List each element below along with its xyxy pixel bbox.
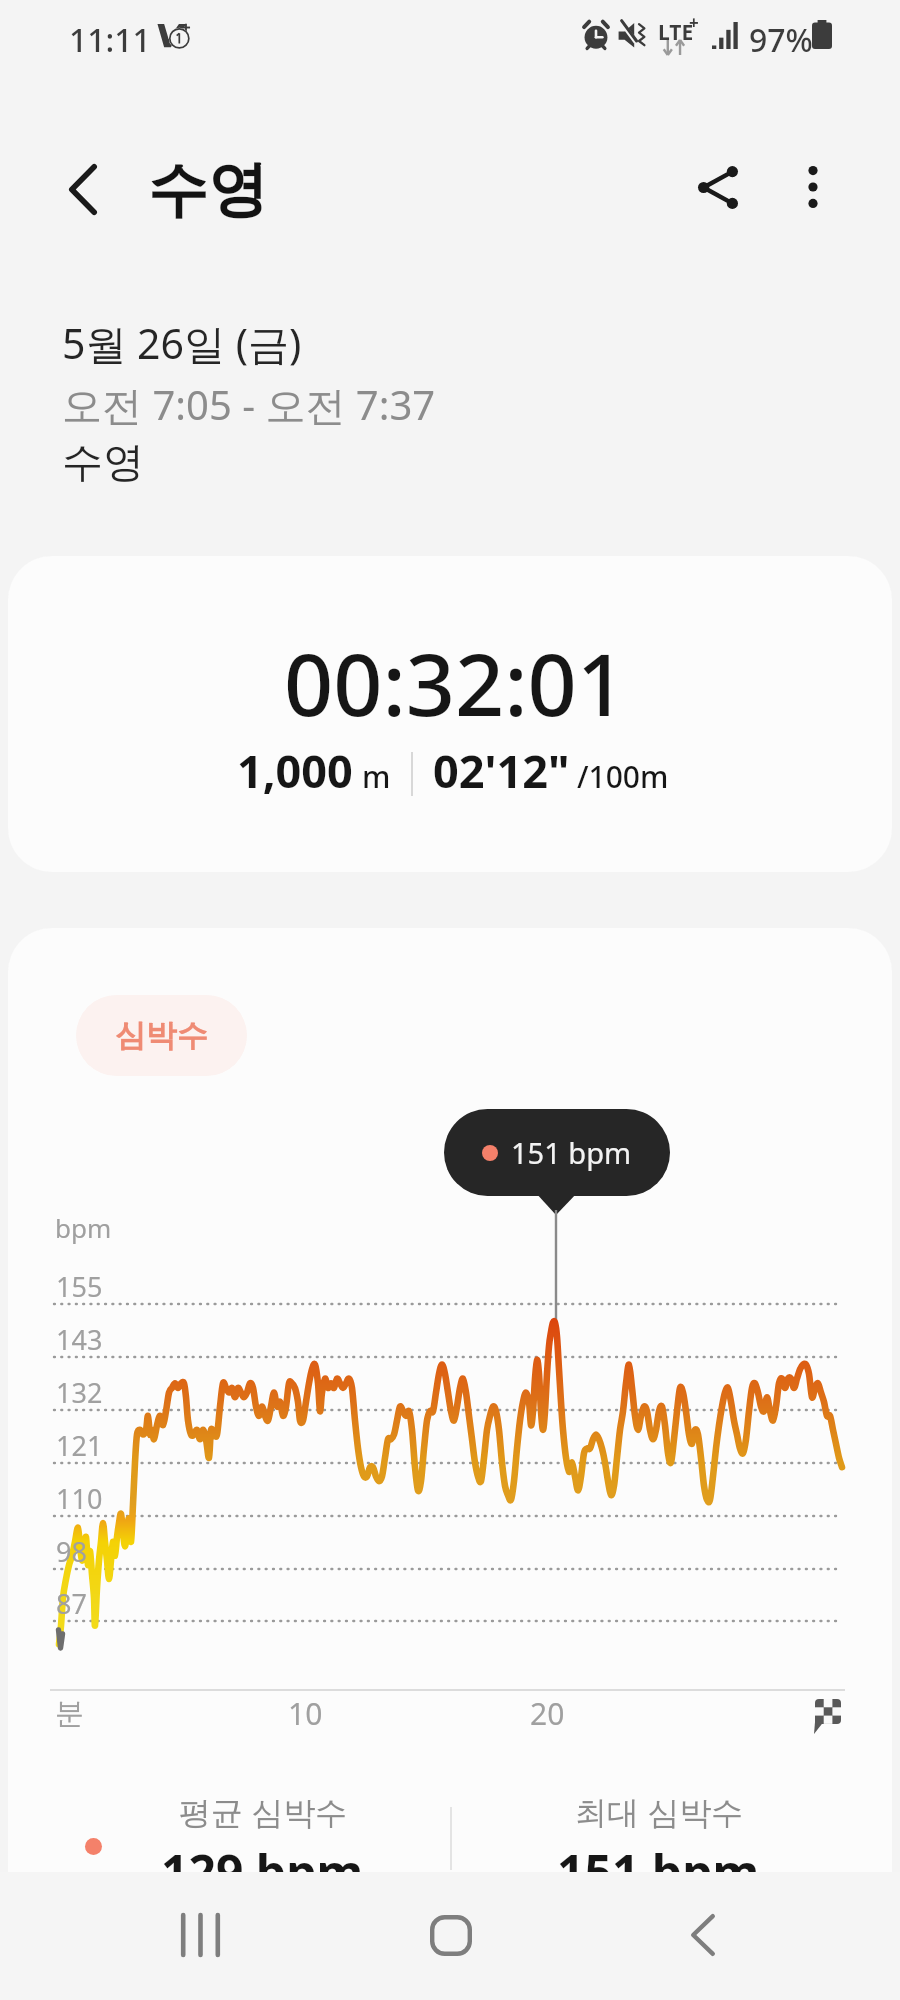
staticText: m bbox=[362, 756, 391, 797]
staticText: 평균 심박수 bbox=[179, 1790, 348, 1834]
staticText: 151 bpm bbox=[557, 1839, 760, 1904]
staticText: 최대 심박수 bbox=[575, 1790, 744, 1834]
button[interactable]: 00:32:01 bbox=[8, 556, 892, 872]
staticText: 10 bbox=[288, 1693, 323, 1734]
staticText: bpm bbox=[55, 1210, 112, 1245]
staticText: LTE bbox=[658, 18, 694, 47]
staticText: 1,000 bbox=[237, 740, 353, 801]
button[interactable]: More options bbox=[774, 148, 852, 226]
staticText: 98 bbox=[56, 1533, 87, 1570]
staticText: 11:11 bbox=[69, 18, 151, 62]
staticText: 20 bbox=[530, 1693, 565, 1734]
button[interactable]: Home bbox=[411, 1888, 491, 1982]
staticText: 수영 bbox=[62, 437, 144, 489]
button[interactable]: 심박수 bbox=[76, 995, 247, 1076]
staticText: 5월 26일 (금) bbox=[62, 315, 302, 371]
staticText: 121 bbox=[56, 1427, 103, 1464]
staticText: 02'12" bbox=[433, 740, 570, 801]
staticText: 수영 bbox=[148, 152, 268, 228]
staticText: 143 bbox=[56, 1321, 103, 1358]
staticText: 00:32:01 bbox=[284, 624, 626, 741]
staticText: 97% bbox=[749, 18, 813, 62]
staticText: 87 bbox=[56, 1585, 87, 1622]
staticText: 심박수 bbox=[115, 1016, 208, 1055]
staticText: 151 bpm bbox=[511, 1133, 632, 1172]
staticText: /100m bbox=[577, 756, 669, 797]
staticText: 110 bbox=[56, 1480, 103, 1517]
button[interactable]: Share bbox=[679, 148, 757, 226]
button[interactable]: Recent apps bbox=[160, 1888, 240, 1982]
staticText: 분 bbox=[55, 1695, 84, 1732]
staticText: 오전 7:05 - 오전 7:37 bbox=[62, 377, 436, 432]
staticText: 155 bbox=[56, 1268, 103, 1305]
staticText: 132 bbox=[56, 1374, 103, 1411]
button[interactable]: Back bbox=[663, 1888, 743, 1982]
button[interactable]: Back bbox=[44, 150, 122, 228]
staticText: 129 bpm bbox=[161, 1839, 364, 1904]
staticText: + bbox=[689, 11, 699, 34]
